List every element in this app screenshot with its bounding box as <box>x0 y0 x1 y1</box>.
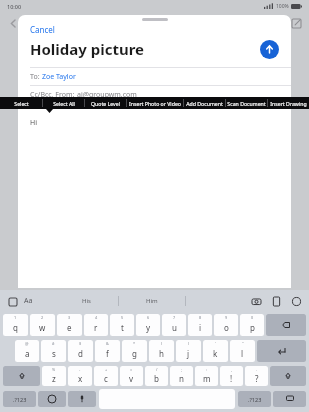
staticText: 9 <box>225 315 228 320</box>
button[interactable]: Insert Photo or Video <box>127 97 183 109</box>
button[interactable]: , <box>220 366 243 386</box>
button[interactable]: shift <box>3 366 40 386</box>
button[interactable]: Cancel <box>18 23 67 36</box>
button[interactable]: emoji <box>38 391 66 407</box>
button[interactable]: * <box>122 340 147 362</box>
button[interactable]: ) <box>176 340 201 362</box>
button[interactable]: Insert Drawing <box>268 97 309 109</box>
button[interactable]: 2 <box>30 314 55 336</box>
button[interactable]: . <box>245 366 268 386</box>
button[interactable]: & <box>95 340 120 362</box>
button[interactable]: Select <box>0 97 42 109</box>
button[interactable]: $ <box>68 340 93 362</box>
button[interactable]: 0 <box>240 314 264 336</box>
button[interactable]: / <box>145 366 168 386</box>
staticText: t <box>121 322 124 333</box>
staticText: * <box>133 341 136 346</box>
staticText: @ <box>25 341 29 346</box>
button[interactable]: 9 <box>214 314 238 336</box>
button[interactable]: ' <box>203 340 228 362</box>
button[interactable]: mic <box>68 391 96 407</box>
button[interactable]: Aa <box>24 296 33 306</box>
staticText: 8 <box>199 315 202 320</box>
staticText: x <box>78 373 83 384</box>
staticText: w <box>39 322 46 333</box>
button[interactable]: shift2 <box>270 366 306 386</box>
staticText: Insert Photo or Video <box>129 100 181 107</box>
staticText: , <box>231 367 233 372</box>
button[interactable]: 3 <box>57 314 82 336</box>
staticText: Quote Level <box>91 100 120 107</box>
button[interactable]: .?123 <box>238 391 271 407</box>
button[interactable]: 8 <box>188 314 212 336</box>
staticText: i <box>199 322 202 333</box>
button[interactable]: Document <box>270 295 283 308</box>
staticText: 0 <box>251 315 254 320</box>
button[interactable]: 4 <box>84 314 108 336</box>
button[interactable]: Scan Document <box>226 97 267 109</box>
button[interactable]: = <box>120 366 143 386</box>
button[interactable]: return <box>257 340 306 362</box>
staticText: b <box>154 373 159 384</box>
button[interactable]: Compose <box>289 16 303 30</box>
button[interactable]: Him <box>146 297 158 305</box>
button[interactable]: 5 <box>110 314 134 336</box>
staticText: + <box>105 367 108 372</box>
staticText: q <box>13 322 18 333</box>
button[interactable]: Camera <box>250 295 263 308</box>
button[interactable]: - <box>68 366 92 386</box>
staticText: 5 <box>121 315 124 320</box>
staticText: o <box>224 322 229 333</box>
staticText: j <box>187 348 190 359</box>
button[interactable]: Markup <box>290 295 303 308</box>
button[interactable]: % <box>42 366 66 386</box>
button[interactable]: His <box>82 297 91 305</box>
button[interactable]: Quote Level <box>85 97 126 109</box>
staticText: d <box>78 348 83 359</box>
staticText: = <box>130 367 133 372</box>
staticText: ; <box>181 367 183 372</box>
staticText: k <box>213 348 218 359</box>
button[interactable]: ( <box>149 340 174 362</box>
button[interactable]: Add Document <box>184 97 225 109</box>
staticText: ) <box>188 341 190 346</box>
button[interactable]: Undo <box>6 295 19 308</box>
button[interactable]: hide <box>273 391 306 407</box>
button[interactable]: " <box>230 340 255 362</box>
staticText: $ <box>79 341 82 346</box>
staticText: Insert Drawing <box>270 100 307 107</box>
staticText: .?123 <box>248 396 262 403</box>
button[interactable]: delete <box>266 314 306 336</box>
staticText: aj@groupwm.com <box>77 90 137 100</box>
button[interactable]: Send <box>260 40 279 59</box>
staticText: g <box>132 348 137 359</box>
staticText: 2 <box>41 315 44 320</box>
button[interactable]: + <box>94 366 118 386</box>
staticText: Zoe Taylor <box>42 72 76 82</box>
staticText: Add Document <box>186 100 223 107</box>
staticText: v <box>129 373 134 384</box>
staticText: z <box>52 373 56 384</box>
button[interactable]: 7 <box>162 314 186 336</box>
staticText: Holiday picture <box>30 39 145 59</box>
button[interactable]: Select All <box>43 97 84 109</box>
staticText: .?123 <box>13 396 27 403</box>
button[interactable]: @ <box>15 340 39 362</box>
staticText: " <box>242 341 244 346</box>
button[interactable]: ; <box>170 366 193 386</box>
button[interactable]: 1 <box>3 314 28 336</box>
staticText: 1 <box>14 315 17 320</box>
button[interactable]: # <box>41 340 66 362</box>
staticText: & <box>106 341 109 346</box>
button[interactable]: Cc/Bcc, From: <box>18 86 291 103</box>
staticText: # <box>52 341 55 346</box>
button[interactable]: 6 <box>136 314 160 336</box>
button[interactable]: Back <box>6 16 20 30</box>
button[interactable]: .?123 <box>3 391 36 407</box>
button[interactable]: To: <box>18 68 291 85</box>
staticText: To: <box>30 72 42 82</box>
button[interactable]: : <box>195 366 218 386</box>
